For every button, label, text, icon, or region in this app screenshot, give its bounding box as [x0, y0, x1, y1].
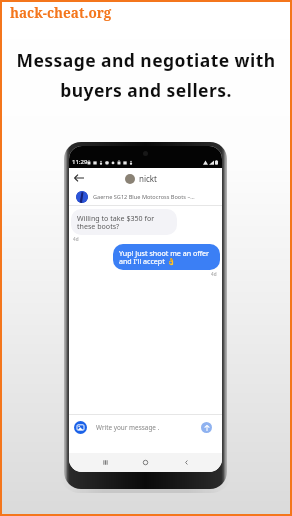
staticText: Message and negotiate with buyers and se… — [0, 48, 292, 102]
button[interactable]: Send — [201, 422, 212, 433]
staticText: hack-cheat.org — [10, 4, 112, 22]
staticText: 11:29 — [72, 158, 88, 166]
staticText: 4d — [211, 271, 217, 277]
button[interactable]: Gaerne SG12 Blue Motocross Boots –… — [69, 188, 222, 205]
staticText: nickt — [139, 173, 158, 184]
staticText: Willing to take $350 for these boots? — [77, 213, 173, 231]
staticText: Gaerne SG12 Blue Motocross Boots –… — [93, 193, 195, 201]
button[interactable]: Back — [74, 173, 84, 183]
button[interactable]: Back — [182, 458, 191, 467]
button[interactable]: nickt — [125, 173, 158, 184]
staticText: Write your message . — [96, 423, 160, 432]
button[interactable]: Attach photo — [74, 421, 87, 434]
staticText: Yup! Just shoot me an offer and I'll acc… — [119, 248, 209, 266]
button[interactable]: Home — [141, 458, 150, 467]
staticText: 4d — [73, 236, 79, 242]
button[interactable]: Recents — [101, 458, 110, 467]
